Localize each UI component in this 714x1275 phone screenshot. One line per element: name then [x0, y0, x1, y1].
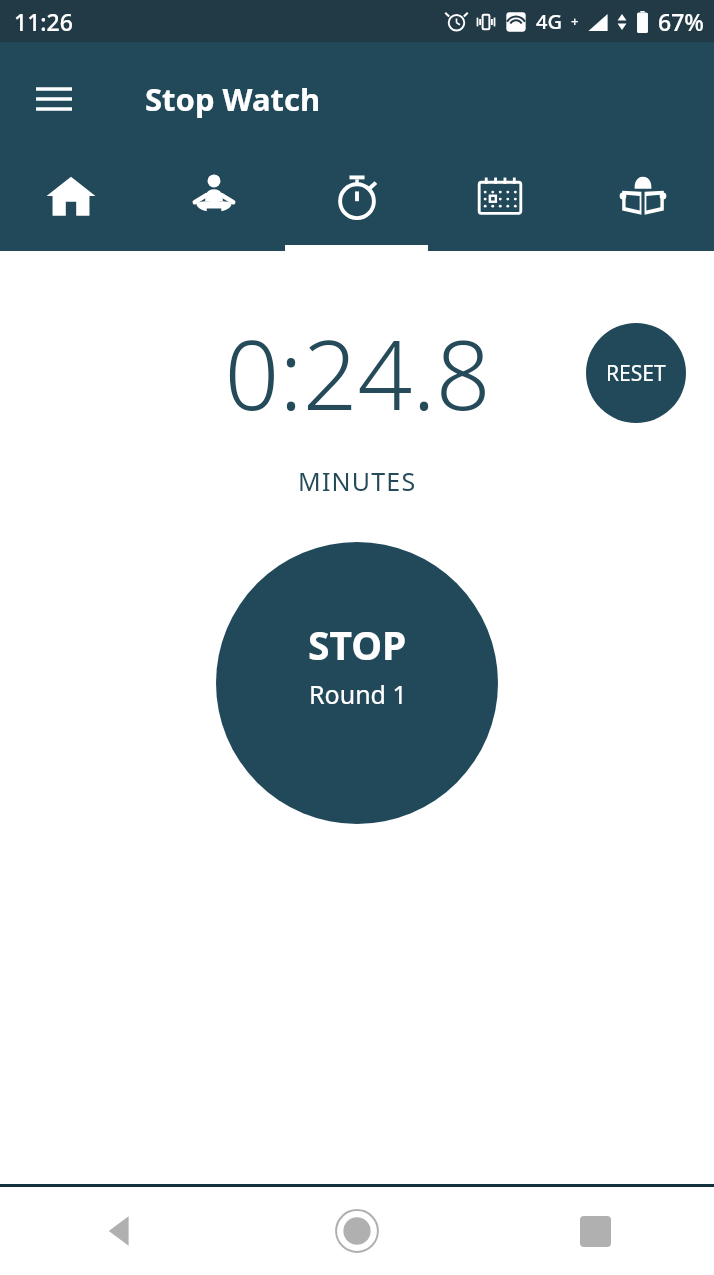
staticText: Round 1 — [309, 677, 407, 711]
staticText: 4G — [536, 8, 562, 35]
staticText: Stop Watch — [145, 78, 321, 120]
button[interactable]: Home — [238, 1187, 476, 1275]
staticText: 0:24.8 — [224, 307, 491, 438]
staticText: STOP — [308, 618, 407, 671]
button[interactable]: Meditation — [142, 155, 285, 251]
button[interactable]: Open navigation menu — [22, 67, 86, 131]
staticText: 67% — [658, 6, 704, 37]
staticText: 11:26 — [14, 6, 73, 37]
staticText: + — [571, 12, 579, 30]
button[interactable]: Recent apps — [476, 1187, 714, 1275]
button[interactable]: RESET — [586, 323, 686, 423]
button[interactable]: Library — [571, 155, 714, 251]
staticText: RESET — [606, 359, 666, 388]
button[interactable]: Calendar — [428, 155, 571, 251]
button[interactable]: Home — [0, 155, 142, 251]
button[interactable]: Back — [0, 1187, 238, 1275]
button[interactable]: STOP — [216, 542, 498, 824]
staticText: MINUTES — [298, 464, 417, 498]
button[interactable]: Stop watch — [285, 155, 428, 251]
